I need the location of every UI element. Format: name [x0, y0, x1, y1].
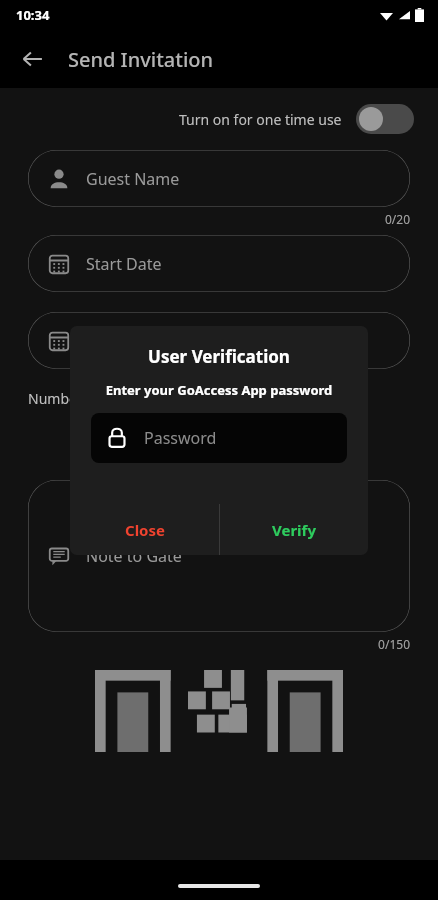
button[interactable]: Note to Gate [28, 480, 410, 632]
staticText: Guest Name [86, 168, 180, 190]
staticText: Password [144, 427, 217, 449]
staticText: 0/20 [0, 211, 410, 227]
staticText: 0/150 [0, 636, 410, 652]
button[interactable]: Back [8, 35, 56, 83]
button[interactable]: Password [91, 413, 347, 463]
button[interactable] [28, 312, 410, 369]
staticText: Send Invitation [68, 46, 214, 73]
staticText: Verify [272, 520, 316, 540]
button[interactable]: Guest Name [28, 150, 410, 207]
staticText: Start Date [86, 253, 162, 275]
staticText: Note to Gate [86, 545, 182, 567]
button[interactable]: Turn on for one time use [179, 104, 414, 134]
staticText: User Verification [70, 345, 368, 368]
button[interactable]: Start Date [28, 235, 410, 292]
staticText: Number of Guest [28, 389, 142, 408]
staticText: Close [125, 520, 165, 540]
button[interactable]: Verify [219, 504, 368, 555]
button[interactable]: Close [70, 504, 219, 555]
button[interactable] [136, 420, 248, 458]
staticText: 10:34 [16, 6, 50, 24]
staticText: Enter your GoAccess App password [70, 381, 368, 399]
staticText: Turn on for one time use [179, 110, 342, 129]
